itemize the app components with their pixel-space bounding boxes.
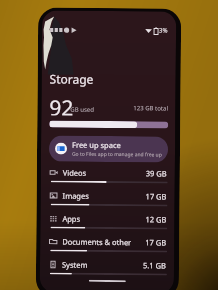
staticText: 92 [49,93,74,116]
staticText: GB used [70,106,94,114]
staticText: 123 GB total [133,104,168,112]
staticText: 5.1 GB [143,260,166,270]
staticText: 39 GB [146,168,167,178]
button[interactable]: Videos [41,165,175,190]
staticText: Storage [50,70,94,87]
button[interactable]: Images [40,188,175,213]
staticText: 12 GB [145,214,166,224]
staticText: Videos [63,168,87,178]
button[interactable]: Free up space [49,135,168,162]
staticText: Images [63,191,90,201]
staticText: 17 GB [145,237,166,247]
button[interactable]: Apps [40,211,174,236]
other: Notification icons [50,26,77,34]
staticText: 3% [159,26,168,34]
staticText: 17 GB [146,191,167,201]
button[interactable]: System [40,257,174,282]
staticText: Free up space [72,140,121,150]
staticText: Apps [62,214,80,224]
staticText: Documents & other [62,237,132,247]
staticText: System [62,260,88,270]
button[interactable]: Documents & other [40,234,174,259]
staticText: Go to Files app to manage and free up sp… [72,151,164,158]
